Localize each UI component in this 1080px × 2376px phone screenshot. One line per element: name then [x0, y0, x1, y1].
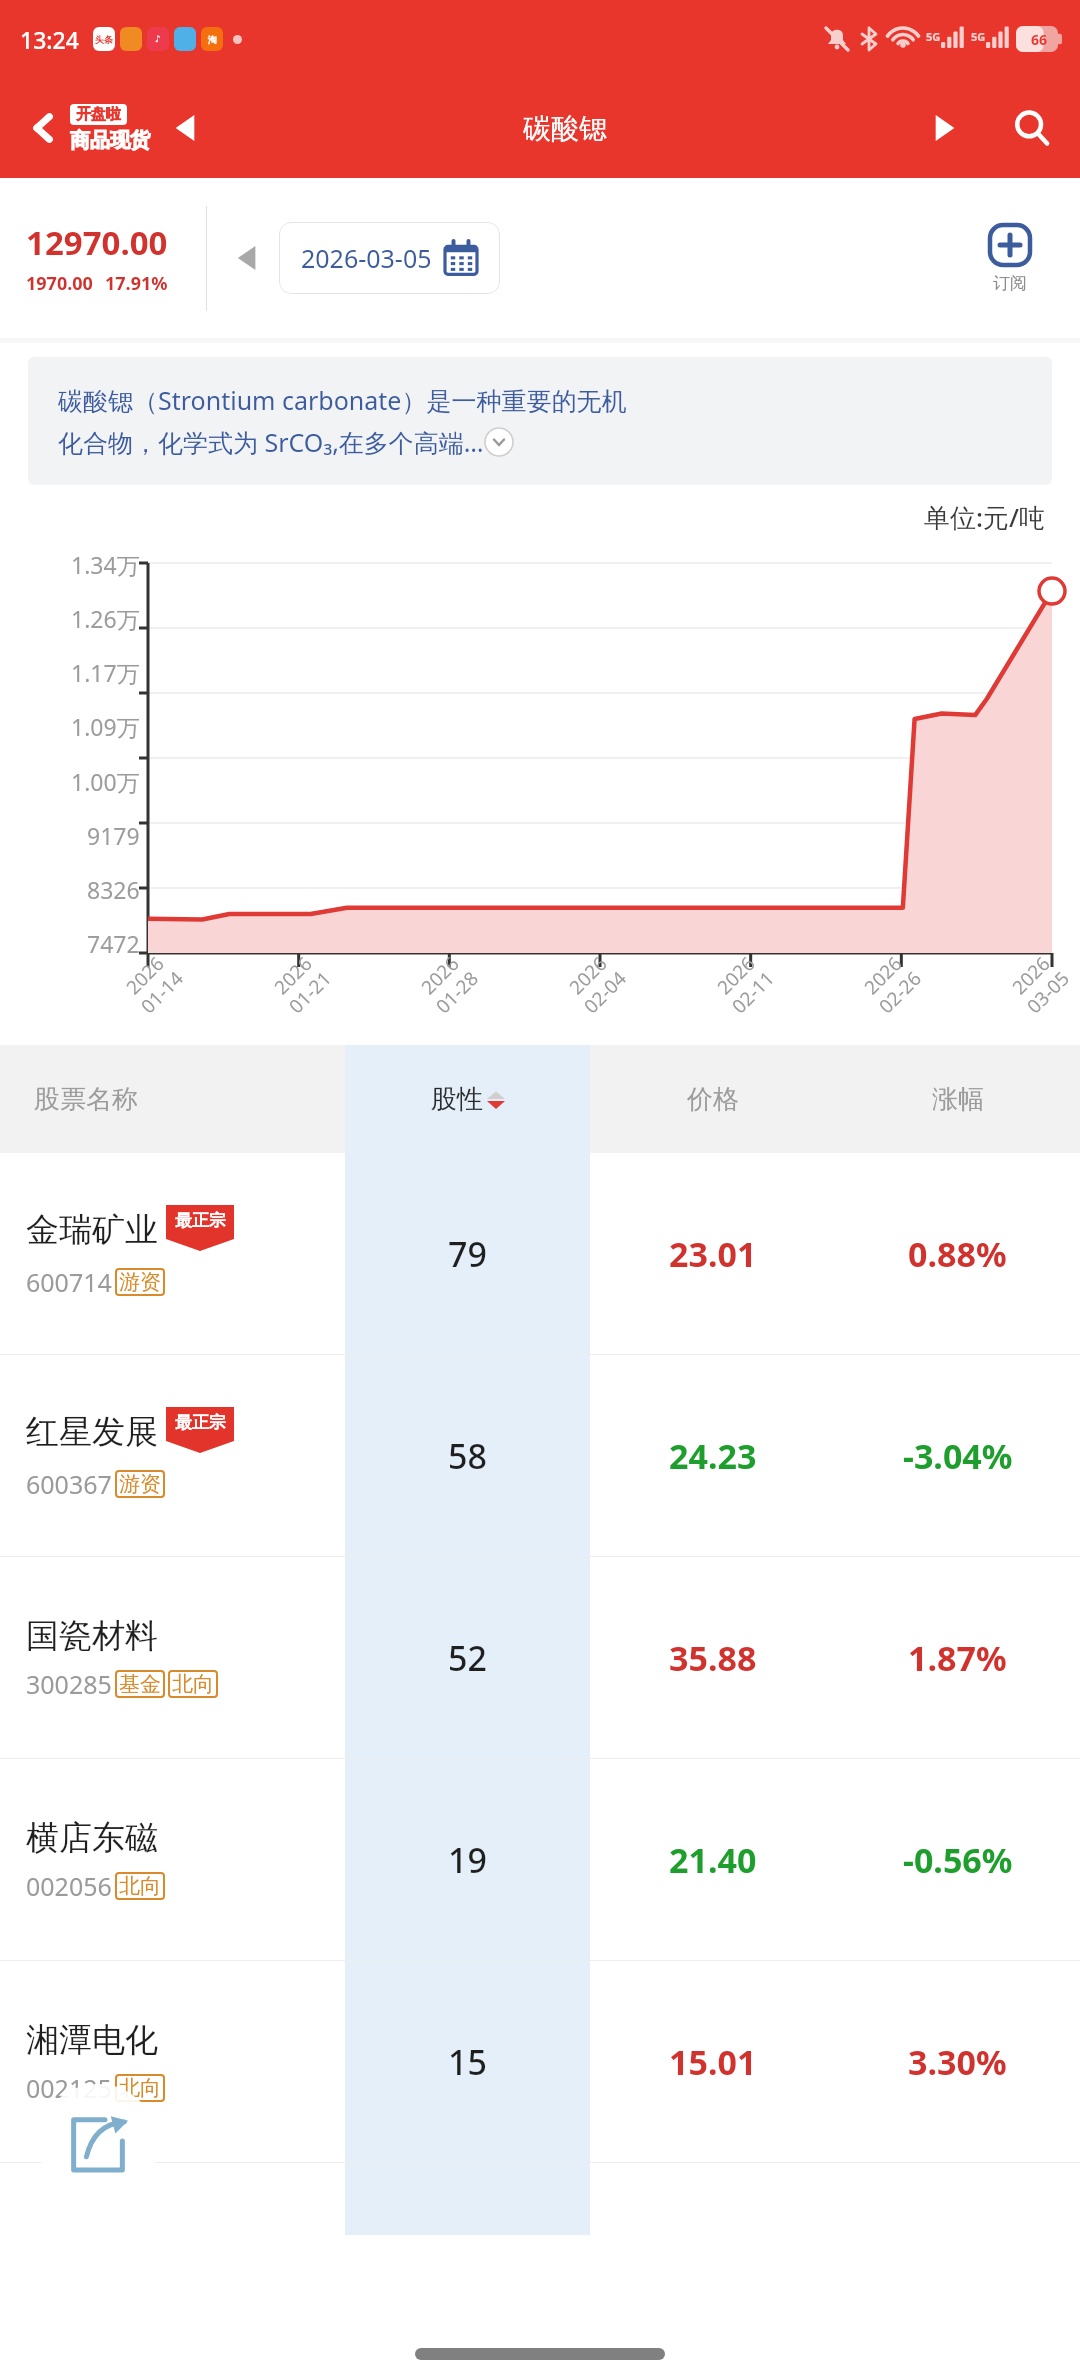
button[interactable]: 国瓷材料	[0, 1557, 1080, 1759]
staticText: 15	[448, 2039, 487, 2085]
staticText: 涨幅	[932, 1083, 984, 1116]
button[interactable]: 订阅	[940, 223, 1080, 294]
staticText: -0.56%	[903, 1837, 1013, 1883]
button[interactable]: 下一个	[922, 106, 966, 150]
staticText: 5G	[971, 29, 986, 44]
staticText: 淘	[208, 34, 217, 45]
staticText: 15.01	[669, 2039, 757, 2085]
staticText: 基金	[119, 1671, 161, 1697]
staticText: 订阅	[993, 273, 1027, 294]
staticText: 商品现货	[70, 128, 150, 153]
staticText: 58	[448, 1433, 487, 1479]
staticText: 002056	[26, 1869, 112, 1903]
staticText: 碳酸锶	[523, 111, 607, 146]
staticText: 600714	[26, 1265, 112, 1299]
button[interactable]: 红星发展	[0, 1355, 1080, 1557]
staticText: 13:24	[20, 24, 79, 55]
staticText: 化合物，化学式为 SrCO₃,在多个高端…	[58, 425, 484, 459]
staticText: -3.04%	[903, 1433, 1013, 1479]
staticText: 最正宗	[175, 1210, 226, 1231]
staticText: 2026-03-05	[301, 241, 432, 275]
staticText: 2026 01-14	[118, 948, 188, 1018]
staticText: 游资	[119, 1269, 161, 1295]
staticText: 游资	[119, 1471, 161, 1497]
staticText: 21.40	[669, 1837, 757, 1883]
staticText: 1.26万	[71, 603, 140, 634]
staticText: 7472	[87, 928, 140, 959]
staticText: 002125	[26, 2071, 112, 2105]
staticText: 1970.00	[26, 271, 93, 296]
staticText: 1.34万	[71, 549, 140, 580]
staticText: 国瓷材料	[26, 1615, 158, 1657]
button[interactable]: 碳酸锶（Strontium carbonate）是一种重要的无机	[28, 357, 1052, 485]
staticText: 17.91%	[105, 271, 168, 296]
button[interactable]: 股性	[345, 1045, 590, 1153]
staticText: 0.88%	[908, 1231, 1007, 1277]
staticText: 1.17万	[71, 657, 140, 688]
staticText: 2026 02-26	[856, 948, 926, 1018]
staticText: 8326	[87, 874, 140, 905]
button[interactable]: 2026-03-05	[279, 222, 500, 294]
button[interactable]: 涨幅	[835, 1045, 1080, 1153]
staticText: 3.30%	[908, 2039, 1007, 2085]
staticText: ♪	[155, 34, 161, 44]
staticText: 66	[1031, 30, 1048, 49]
staticText: 单位:元/吨	[924, 499, 1046, 535]
button[interactable]: 股票名称	[0, 1045, 345, 1153]
staticText: 开盘啦	[76, 105, 121, 124]
staticText: 头条	[95, 34, 113, 45]
staticText: 2026 02-11	[709, 948, 779, 1018]
staticText: 2026 01-21	[266, 948, 336, 1018]
staticText: 价格	[687, 1083, 739, 1116]
button[interactable]: 搜索	[1006, 102, 1058, 154]
staticText: 北向	[119, 1873, 161, 1899]
staticText: 23.01	[669, 1231, 757, 1277]
staticText: 52	[448, 1635, 487, 1681]
staticText: 北向	[172, 1671, 214, 1697]
staticText: 79	[448, 1231, 487, 1277]
staticText: 9179	[87, 820, 140, 851]
staticText: 碳酸锶（Strontium carbonate）是一种重要的无机	[58, 383, 627, 417]
staticText: 12970.00	[26, 220, 168, 265]
staticText: 北向	[119, 2075, 161, 2101]
staticText: 红星发展	[26, 1411, 158, 1453]
staticText: 1.87%	[908, 1635, 1007, 1681]
button[interactable]: 上一个	[164, 106, 208, 150]
staticText: 金瑞矿业	[26, 1209, 158, 1251]
staticText: 1.00万	[71, 766, 140, 797]
button[interactable]: 前一天	[227, 238, 267, 278]
staticText: 600367	[26, 1467, 112, 1501]
staticText: 股票名称	[34, 1083, 138, 1116]
staticText: 19	[448, 1837, 487, 1883]
button[interactable]: 横店东磁	[0, 1759, 1080, 1961]
staticText: 1.09万	[71, 711, 140, 742]
staticText: 2026 03-05	[1004, 948, 1074, 1018]
staticText: 24.23	[669, 1433, 757, 1479]
staticText: 2026 02-04	[561, 948, 631, 1018]
button[interactable]: 分享	[38, 2084, 158, 2204]
button[interactable]: 返回	[22, 106, 66, 150]
staticText: 横店东磁	[26, 1817, 158, 1859]
staticText: 最正宗	[175, 1412, 226, 1433]
staticText: 湘潭电化	[26, 2019, 158, 2061]
button[interactable]: 湘潭电化	[0, 1961, 1080, 2163]
button[interactable]: 金瑞矿业	[0, 1153, 1080, 1355]
staticText: 300285	[26, 1667, 112, 1701]
staticText: 5G	[926, 29, 941, 44]
staticText: 股性	[431, 1083, 483, 1116]
staticText: 2026 01-28	[413, 948, 483, 1018]
staticText: 35.88	[669, 1635, 757, 1681]
button[interactable]: 价格	[590, 1045, 835, 1153]
